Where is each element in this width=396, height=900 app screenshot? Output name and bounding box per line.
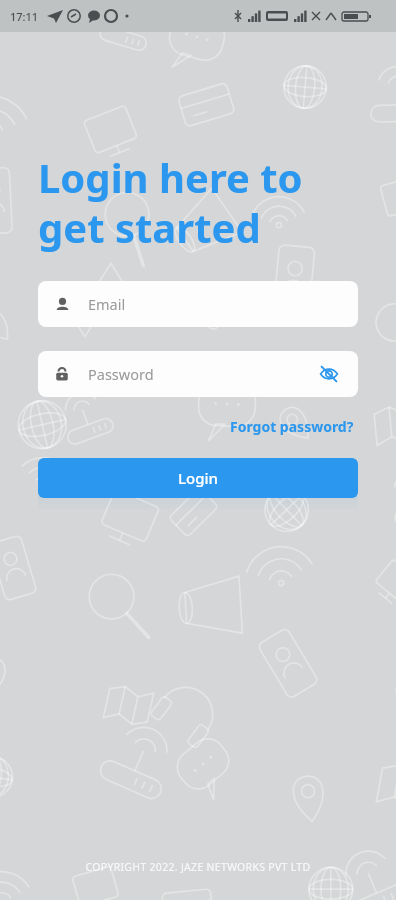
staticText: Forgot password?: [230, 417, 354, 436]
button[interactable]: Login: [38, 458, 358, 498]
button[interactable]: Password: [38, 351, 358, 397]
staticText: 17:11: [10, 9, 39, 24]
staticText: Login: [178, 468, 218, 488]
staticText: COPYRIGHT 2022. JAZE NETWORKS PVT LTD: [0, 860, 396, 874]
button[interactable]: Show password: [314, 359, 344, 389]
button[interactable]: Forgot password?: [226, 413, 358, 440]
button[interactable]: Email: [38, 281, 358, 327]
staticText: Login here to get started: [38, 150, 303, 255]
staticText: Email: [88, 294, 126, 314]
staticText: Password: [88, 364, 314, 384]
